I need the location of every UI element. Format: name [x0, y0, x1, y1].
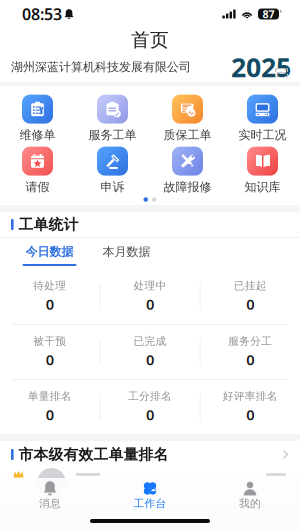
staticText: 处理中 [133, 279, 166, 292]
staticText: 好评率排名 [223, 390, 278, 403]
staticText: 0 [46, 294, 54, 314]
staticText: 已挂起 [234, 279, 267, 292]
button[interactable]: 本月数据 [88, 238, 165, 269]
staticText: 我的 [239, 497, 261, 510]
staticText: 0 [146, 294, 154, 314]
button[interactable]: 我的 [200, 478, 300, 512]
staticText: 2025 [231, 49, 291, 85]
staticText: 已完成 [133, 335, 166, 348]
staticText: 湖州深蓝计算机科技发展有限公司 [11, 60, 191, 74]
staticText: 0 [246, 294, 254, 314]
button[interactable]: 实时工况 [225, 95, 300, 142]
button[interactable]: 质保工单 [150, 95, 225, 142]
staticText: 本月数据 [102, 244, 150, 259]
staticText: 消息 [39, 497, 61, 510]
staticText: 工单统计 [19, 215, 79, 233]
button[interactable]: 故障报修 [150, 147, 225, 194]
staticText: 申诉 [100, 180, 124, 194]
staticText: 服务工单 [88, 128, 136, 142]
staticText: 质保工单 [163, 128, 211, 142]
staticText: 市本级有效工单量排名 [19, 445, 169, 463]
button[interactable]: 知识库 [225, 147, 300, 194]
staticText: 0 [146, 350, 154, 369]
button[interactable]: 申诉 [75, 147, 150, 194]
button[interactable]: 服务工单 [75, 95, 150, 142]
button[interactable]: 请假 [0, 147, 75, 194]
button[interactable]: 今日数据 [11, 238, 88, 269]
staticText: 服务分工 [228, 335, 272, 348]
staticText: 87 [262, 7, 274, 21]
staticText: 0 [246, 405, 254, 424]
staticText: 单量排名 [28, 390, 72, 403]
staticText: 08:53 [22, 3, 62, 25]
staticText: 0 [46, 350, 54, 369]
staticText: 故障报修 [163, 180, 211, 194]
staticText: 待处理 [33, 279, 66, 292]
staticText: 被干预 [33, 335, 66, 348]
staticText: 工作台 [133, 497, 166, 510]
staticText: 工分排名 [128, 390, 172, 403]
staticText: 0 [246, 350, 254, 369]
staticText: 0 [146, 405, 154, 424]
button[interactable]: 工作台 [100, 478, 200, 512]
staticText: 维修单 [19, 128, 55, 142]
staticText: 实时工况 [238, 128, 286, 142]
staticText: 首页 [131, 28, 169, 51]
staticText: 今日数据 [25, 244, 73, 259]
staticText: 0 [46, 405, 54, 424]
staticText: 知识库 [244, 180, 280, 194]
button[interactable]: 消息 [0, 478, 100, 512]
staticText: 请假 [25, 180, 49, 194]
button[interactable]: 市本级有效工单量排名 [0, 441, 300, 468]
button[interactable]: 维修单 [0, 95, 75, 142]
